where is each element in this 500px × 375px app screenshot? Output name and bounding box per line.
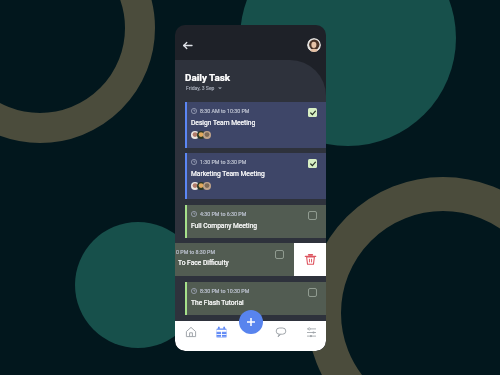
staticText: 4:30 PM to 6:30 PM [200, 211, 247, 217]
staticText: 0 PM to 8:30 PM [176, 249, 216, 255]
button[interactable]: Completed [308, 159, 317, 168]
button[interactable]: Settings [300, 321, 322, 343]
staticText: Friday, 3 Sep [186, 85, 215, 91]
button[interactable]: 8:30 AM to 10:30 PM [185, 102, 326, 148]
button[interactable]: Back [178, 36, 196, 54]
button[interactable]: Completed [308, 108, 317, 117]
button[interactable]: 4:30 PM to 6:30 PM [185, 205, 326, 238]
button[interactable]: Messages [270, 321, 292, 343]
button[interactable]: Profile [307, 38, 321, 52]
staticText: Daily Task [185, 72, 231, 84]
staticText: Full Company Meeting [191, 222, 258, 230]
button[interactable]: 1:30 PM to 3:30 PM [185, 153, 326, 199]
staticText: Design Team Meeting [191, 119, 256, 127]
button[interactable]: Add task [239, 310, 263, 334]
button[interactable]: Mark complete [308, 288, 317, 297]
button[interactable]: 0 PM to 8:30 PM [175, 243, 294, 276]
staticText: Marketing Team Meeting [191, 170, 265, 178]
staticText: 1:30 PM to 3:30 PM [200, 159, 247, 165]
button[interactable]: Mark complete [275, 250, 284, 259]
button[interactable]: 8:30 PM to 10:30 PM [185, 282, 326, 315]
staticText: To Face Difficulty [178, 259, 229, 267]
button[interactable]: Delete [294, 243, 326, 276]
staticText: 8:30 PM to 10:30 PM [200, 288, 250, 294]
button[interactable]: Home [180, 321, 202, 343]
staticText: 8:30 AM to 10:30 PM [200, 108, 250, 114]
button[interactable]: Calendar [210, 321, 232, 343]
staticText: The Flash Tutorial [191, 299, 244, 307]
button[interactable]: Mark complete [308, 211, 317, 220]
